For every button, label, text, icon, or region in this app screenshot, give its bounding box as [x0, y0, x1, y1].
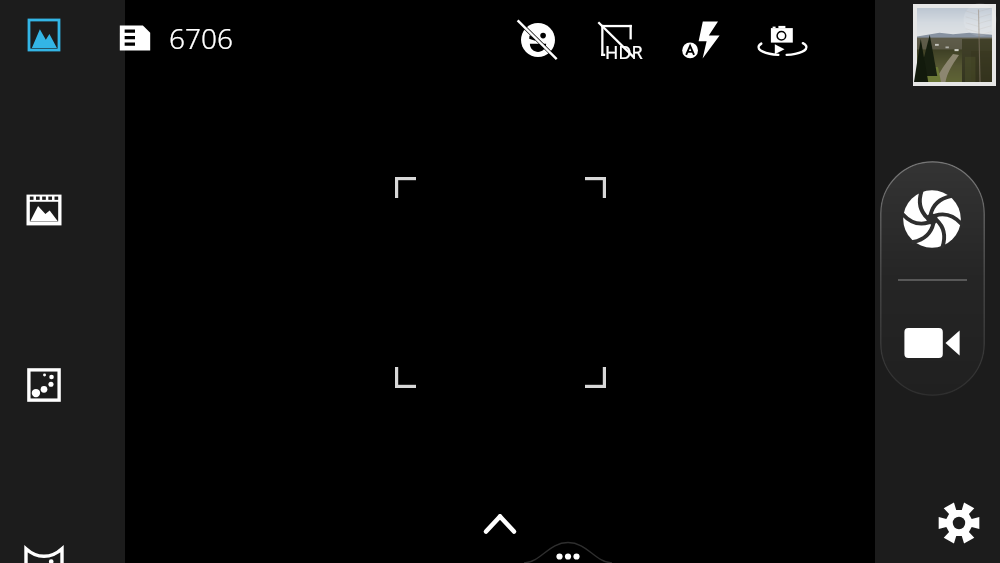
button[interactable]: Expand controls	[474, 498, 526, 550]
button[interactable]: Photo mode	[18, 9, 70, 61]
staticText: 6706	[169, 19, 233, 57]
button[interactable]: Flash auto	[672, 12, 728, 68]
staticText: HDR	[605, 40, 643, 65]
button[interactable]: More options	[524, 538, 612, 563]
button[interactable]: Last photo	[917, 8, 992, 82]
button[interactable]: Record video	[886, 297, 978, 389]
button[interactable]: Smile detection off	[510, 12, 566, 68]
button[interactable]: Switch camera	[750, 9, 812, 71]
button[interactable]: Bokeh mode	[18, 359, 70, 411]
button[interactable]: Settings	[930, 494, 988, 552]
button[interactable]: Shutter	[886, 173, 978, 265]
button[interactable]: HDR off	[595, 18, 639, 62]
button[interactable]: Burst mode	[18, 184, 70, 236]
button[interactable]: Panorama mode	[18, 534, 70, 563]
button[interactable]: 6706	[115, 13, 233, 63]
